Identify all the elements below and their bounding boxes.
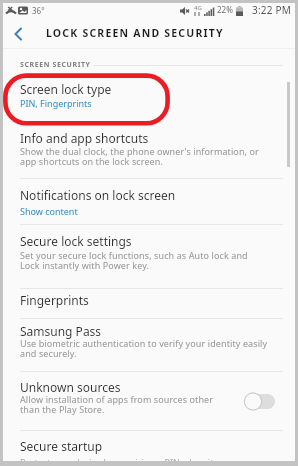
button[interactable] xyxy=(14,28,22,40)
button[interactable] xyxy=(3,74,295,124)
staticText: Secure startup xyxy=(20,438,103,454)
staticText: Notifications on lock screen xyxy=(20,187,176,203)
staticText: Samsung Pass xyxy=(20,323,102,339)
staticText: Allow installation of apps from sources … xyxy=(20,393,214,415)
staticText: Screen lock type xyxy=(20,81,112,97)
staticText: Use biometric authentication to verify y… xyxy=(20,337,268,359)
staticText: 22% xyxy=(217,4,233,15)
staticText: PIN, Fingerprints xyxy=(20,97,92,109)
staticText: Show the dual clock, the phone owner's i… xyxy=(20,145,259,167)
staticText: Info and app shortcuts xyxy=(20,130,149,146)
button[interactable] xyxy=(3,289,295,318)
staticText: Secure lock settings xyxy=(20,233,132,249)
button[interactable] xyxy=(3,19,43,49)
button[interactable] xyxy=(245,393,280,410)
button[interactable] xyxy=(3,319,295,371)
staticText: 4G xyxy=(194,4,202,12)
staticText: Fingerprints xyxy=(20,292,89,308)
button[interactable] xyxy=(3,372,295,430)
button[interactable] xyxy=(3,127,295,178)
staticText: SCREEN SECURITY xyxy=(20,60,91,70)
button[interactable] xyxy=(3,431,295,461)
staticText: Protect your device by requiring a PIN w… xyxy=(20,456,214,461)
staticText: Unknown sources xyxy=(20,379,121,395)
staticText: 36° xyxy=(32,5,45,16)
staticText: LOCK SCREEN AND SECURITY xyxy=(46,26,224,40)
staticText: Show content xyxy=(20,205,78,217)
staticText: 3:22 PM xyxy=(252,3,291,17)
button[interactable] xyxy=(3,225,295,288)
staticText: Set your secure lock functions, such as … xyxy=(20,249,248,271)
button[interactable] xyxy=(3,179,295,224)
